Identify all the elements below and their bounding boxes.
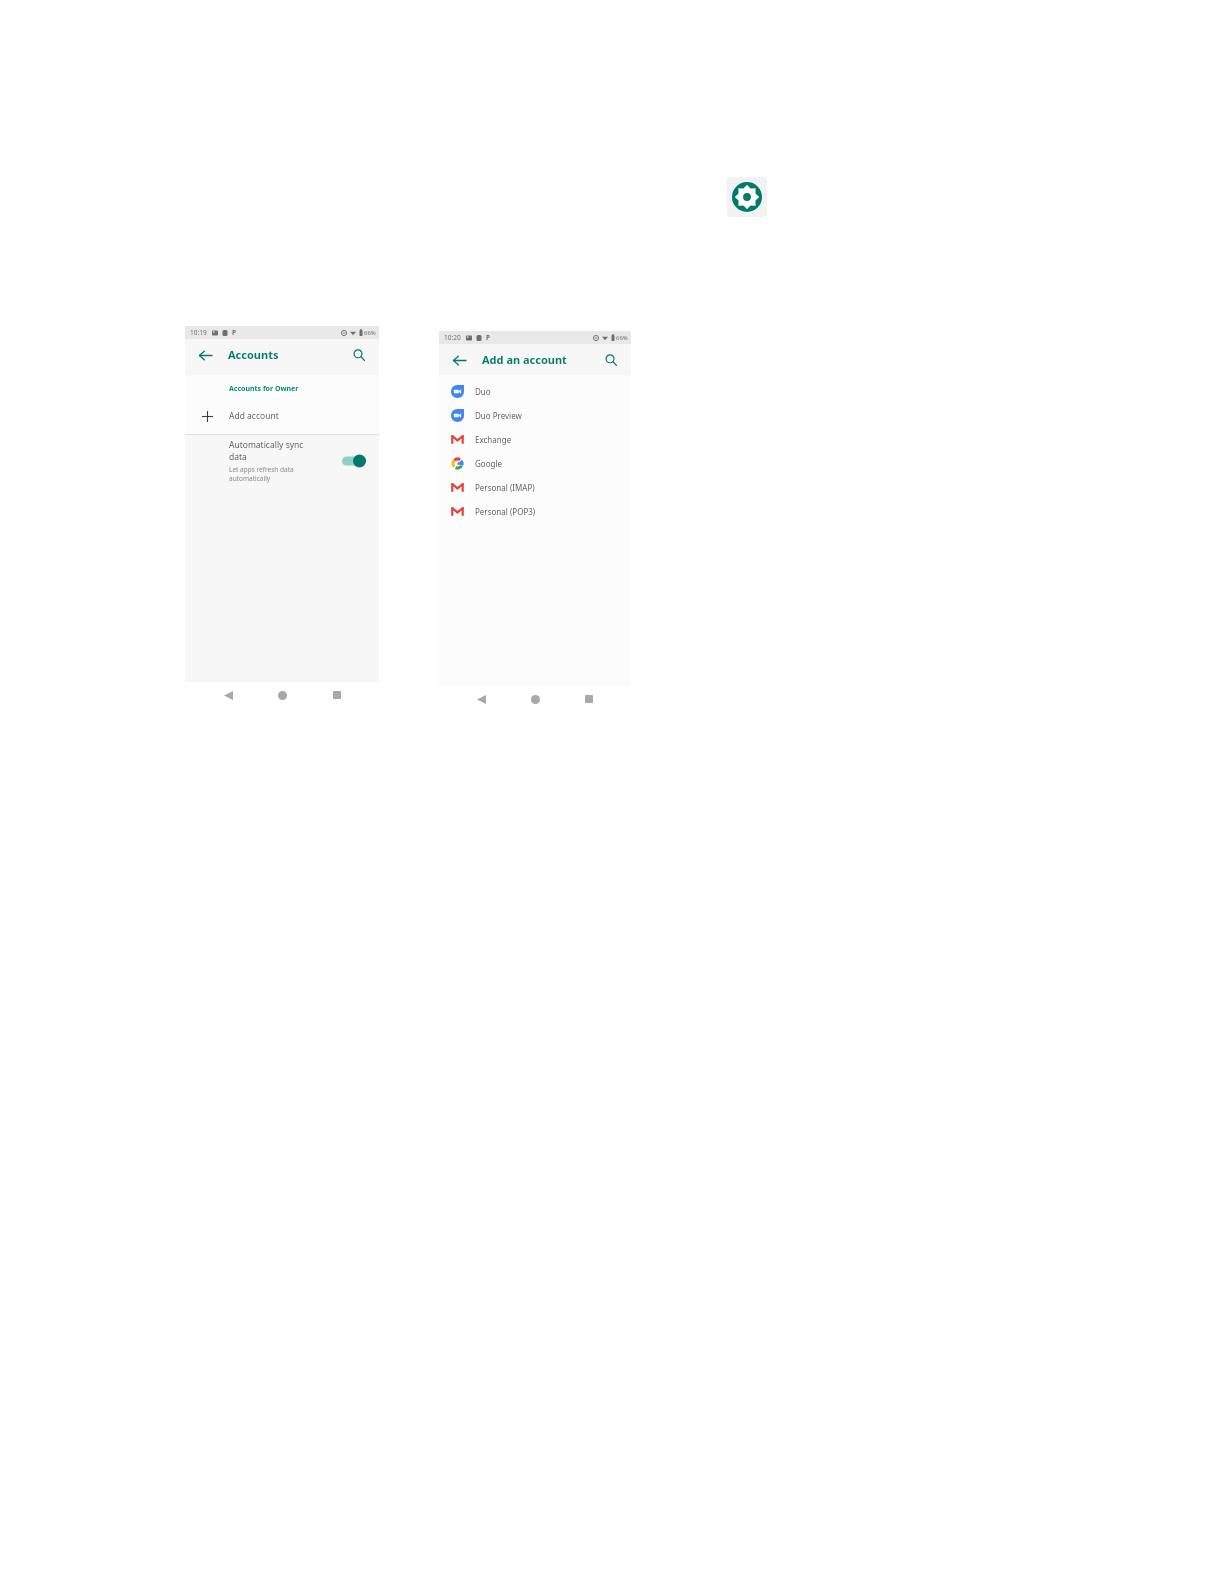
button[interactable]: Duo	[439, 379, 631, 403]
staticText: Google	[475, 458, 502, 469]
staticText: Personal (POP3)	[475, 506, 536, 517]
staticText: 66%	[364, 329, 376, 337]
staticText: Automatically sync	[229, 439, 304, 451]
button[interactable]: Back	[469, 687, 493, 711]
button[interactable]: Personal (IMAP)	[439, 475, 631, 499]
button[interactable]: Automatically sync data toggle	[341, 452, 367, 470]
button[interactable]: Duo Preview	[439, 403, 631, 427]
button[interactable]: Automatically sync	[185, 435, 379, 487]
staticText: Accounts for Owner	[229, 384, 299, 394]
button[interactable]: Home	[523, 687, 547, 711]
staticText: Add account	[229, 410, 279, 422]
button[interactable]: Search	[600, 349, 622, 371]
button[interactable]: Back	[216, 683, 240, 707]
button[interactable]: Personal (POP3)	[439, 499, 631, 523]
staticText: Accounts	[228, 347, 279, 362]
staticText: 66%	[616, 334, 628, 342]
button[interactable]: Exchange	[439, 427, 631, 451]
staticText: data	[229, 451, 247, 463]
button[interactable]: Recent apps	[577, 687, 601, 711]
button[interactable]: Recent apps	[325, 683, 349, 707]
staticText: P	[232, 328, 237, 337]
staticText: Personal (IMAP)	[475, 482, 535, 493]
staticText: Duo	[475, 386, 491, 397]
staticText: Add an account	[482, 352, 567, 367]
button[interactable]: Home	[270, 683, 294, 707]
staticText: 10:19	[190, 328, 207, 337]
staticText: 10:20	[444, 333, 461, 342]
staticText: Exchange	[475, 434, 512, 445]
staticText: automatically	[229, 474, 271, 483]
staticText: Duo Preview	[475, 410, 522, 421]
button[interactable]: Settings	[727, 177, 767, 217]
button[interactable]: Back	[448, 349, 470, 371]
button[interactable]: Google	[439, 451, 631, 475]
button[interactable]: Search	[348, 344, 370, 366]
button[interactable]: Back	[194, 344, 216, 366]
staticText: P	[486, 333, 491, 342]
staticText: Let apps refresh data	[229, 465, 294, 474]
button[interactable]: Add account	[185, 404, 379, 428]
